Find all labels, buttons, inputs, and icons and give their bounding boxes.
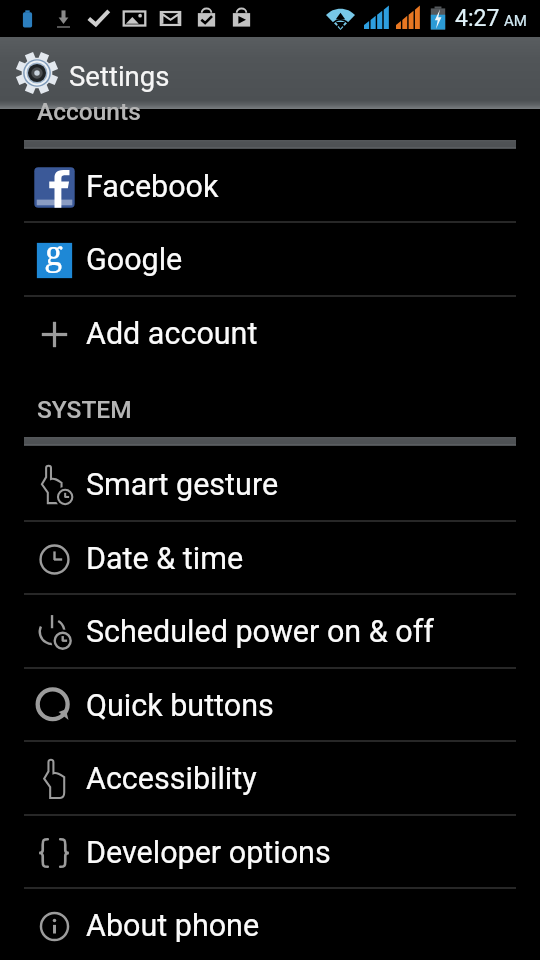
staticText: Date & time [86,541,244,577]
staticText: 4:27 [455,5,500,32]
staticText: Accounts [37,97,141,126]
staticText: Accessibility [86,761,257,797]
staticText: AM [504,12,527,30]
staticText: Facebook [86,169,219,205]
staticText: Google [86,242,183,278]
button[interactable]: About phone [0,889,540,960]
button[interactable]: Settings [0,37,540,109]
staticText: Quick buttons [86,688,274,724]
button[interactable]: Date & time [0,522,540,596]
staticText: Add account [86,316,258,352]
staticText: Smart gesture [86,467,279,503]
staticText: Settings [69,60,170,92]
staticText: SYSTEM [37,395,132,424]
staticText: g [45,230,63,275]
button[interactable]: Developer options [0,816,540,890]
staticText: Developer options [86,835,331,871]
button[interactable]: Facebook [0,150,540,224]
button[interactable]: g [0,223,540,297]
button[interactable]: Add account [0,297,540,371]
staticText: Scheduled power on & off [86,614,434,650]
staticText: About phone [86,908,260,944]
button[interactable]: Quick buttons [0,669,540,743]
button[interactable]: Accessibility [0,742,540,816]
button[interactable]: Smart gesture [0,448,540,522]
button[interactable]: Scheduled power on & off [0,595,540,669]
